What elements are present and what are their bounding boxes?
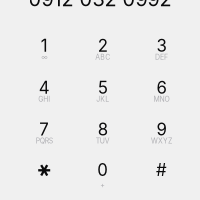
staticText: 0912 032 0992 (28, 0, 171, 11)
staticText: 9 (157, 119, 167, 139)
staticText: 0 (97, 160, 108, 180)
button[interactable]: 9 (134, 112, 190, 153)
staticText: PQRS (36, 137, 53, 145)
staticText: 1 (41, 35, 48, 56)
button[interactable]: 5 (75, 70, 131, 111)
button[interactable]: 0 (75, 152, 131, 193)
staticText: 8 (98, 119, 108, 139)
button[interactable]: 7 (16, 112, 72, 153)
staticText: JKL (96, 95, 109, 103)
staticText: 3 (157, 35, 167, 56)
staticText: 4 (39, 77, 50, 98)
staticText: # (156, 160, 167, 180)
button[interactable]: 3 (134, 28, 190, 69)
staticText: 2 (98, 35, 108, 56)
staticText: ABC (95, 53, 110, 61)
staticText: DEF (155, 53, 168, 61)
button[interactable] (16, 152, 72, 193)
staticText: WXYZ (151, 137, 172, 145)
button[interactable]: 4 (16, 70, 72, 111)
staticText: 6 (157, 77, 167, 98)
staticText: ∞ (41, 53, 47, 61)
button[interactable]: 1 (16, 28, 72, 69)
button[interactable]: 8 (75, 112, 131, 153)
button[interactable]: 2 (75, 28, 131, 69)
staticText: TUV (96, 137, 110, 145)
staticText: + (100, 181, 105, 189)
staticText: 7 (39, 119, 49, 139)
staticText: MNO (154, 95, 170, 103)
button[interactable]: # (134, 152, 190, 193)
staticText: 5 (98, 77, 108, 98)
button[interactable]: 6 (134, 70, 190, 111)
staticText: GHI (38, 95, 50, 103)
